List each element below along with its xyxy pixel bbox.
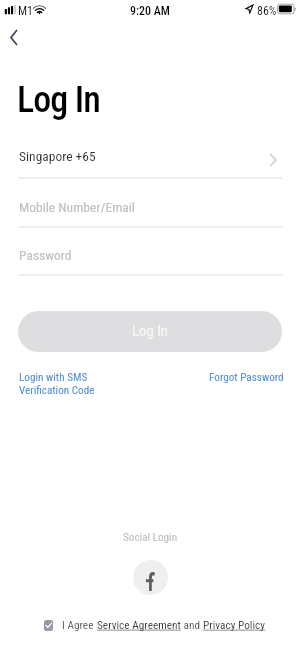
staticText: Mobile Number/Email — [19, 199, 135, 215]
staticText: I Agree — [62, 619, 97, 632]
button[interactable] — [18, 192, 282, 226]
staticText: Password — [19, 247, 72, 263]
staticText: and — [181, 619, 203, 632]
staticText: Login with SMS Verification Code — [19, 371, 95, 397]
staticText: Service Agreement — [97, 619, 181, 632]
staticText: 86% — [257, 4, 277, 18]
button[interactable] — [18, 145, 282, 177]
button[interactable]: Privacy Policy — [203, 619, 265, 632]
button[interactable]: Sign in with Facebook — [133, 560, 168, 595]
staticText: Log In — [132, 322, 169, 339]
staticText: Singapore +65 — [19, 148, 96, 164]
button[interactable]: Back — [0, 22, 28, 52]
button[interactable]: I agree checkbox — [44, 620, 53, 631]
button[interactable]: Log In — [18, 311, 282, 352]
staticText: 9:20 AM — [130, 4, 170, 18]
staticText: Forgot Password — [209, 371, 284, 384]
staticText: Privacy Policy — [203, 619, 265, 632]
button[interactable]: Login with SMS Verification Code — [19, 371, 95, 397]
button[interactable]: Forgot Password — [209, 371, 284, 384]
staticText: Social Login — [123, 531, 178, 544]
staticText: Log In — [17, 79, 100, 121]
button[interactable]: Service Agreement — [97, 619, 181, 632]
staticText: M1 — [18, 4, 33, 18]
button[interactable] — [18, 240, 282, 274]
